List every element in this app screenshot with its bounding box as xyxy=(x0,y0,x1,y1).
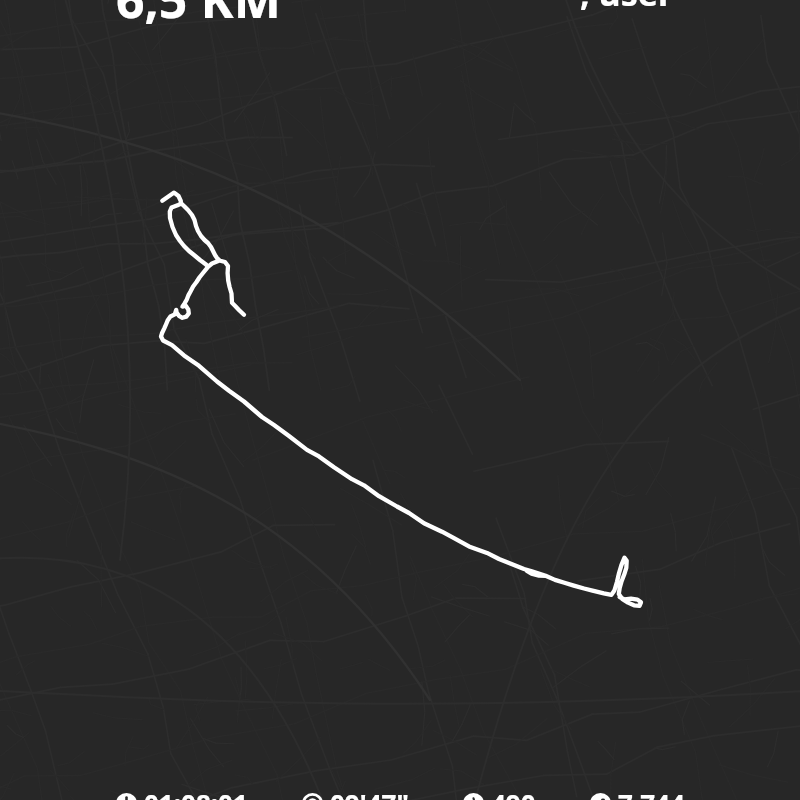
staticText: 09'47" xyxy=(330,786,409,800)
button[interactable]: Steps xyxy=(590,786,685,800)
staticText: 6,5 KM xyxy=(116,0,281,33)
staticText: 490 xyxy=(491,786,536,800)
button[interactable]: Duration xyxy=(116,786,248,800)
staticText: , user xyxy=(580,0,674,16)
button[interactable]: Average pace xyxy=(302,786,409,800)
button[interactable]: Calories xyxy=(463,786,536,800)
staticText: 01:08:01 xyxy=(144,786,248,800)
button[interactable]: Activity route map xyxy=(0,0,800,800)
staticText: 7.744 xyxy=(618,786,685,800)
